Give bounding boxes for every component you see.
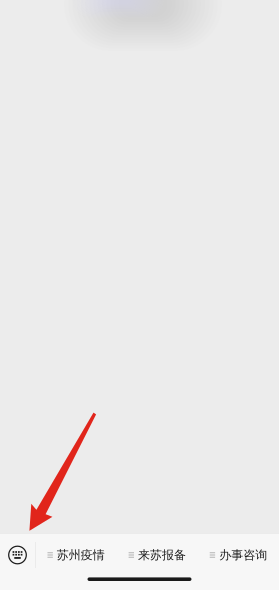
- button[interactable]: 来苏报备: [117, 534, 198, 576]
- staticText: 苏州疫情: [57, 548, 105, 562]
- button[interactable]: 苏州疫情: [36, 534, 117, 576]
- button[interactable]: Keyboard: [0, 534, 35, 576]
- staticText: 办事咨询: [219, 548, 267, 562]
- staticText: 来苏报备: [138, 548, 186, 562]
- button[interactable]: 办事咨询: [198, 534, 279, 576]
